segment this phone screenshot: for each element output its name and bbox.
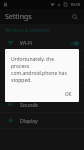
button[interactable]: Wi-Fi bbox=[0, 35, 84, 50]
button[interactable]: Display bbox=[0, 113, 84, 128]
staticText: Wi-Fi bbox=[20, 39, 32, 46]
button[interactable]: More bbox=[0, 67, 84, 82]
staticText: Settings bbox=[5, 12, 32, 22]
staticText: 10:15 bbox=[70, 2, 81, 7]
staticText: Bluetooth bbox=[20, 55, 45, 62]
button[interactable]: OK bbox=[63, 90, 74, 98]
staticText: Display bbox=[20, 117, 38, 124]
staticText: Sounds bbox=[20, 101, 39, 108]
button[interactable]: Bluetooth bbox=[0, 51, 84, 66]
staticText: Wireless & networks bbox=[5, 27, 50, 33]
staticText: Unfortunately, the process com.android.p… bbox=[11, 56, 73, 84]
staticText: OK bbox=[65, 91, 72, 97]
button[interactable]: Search bbox=[70, 12, 80, 22]
button[interactable]: Sounds bbox=[0, 97, 84, 112]
staticText: More bbox=[20, 71, 33, 78]
